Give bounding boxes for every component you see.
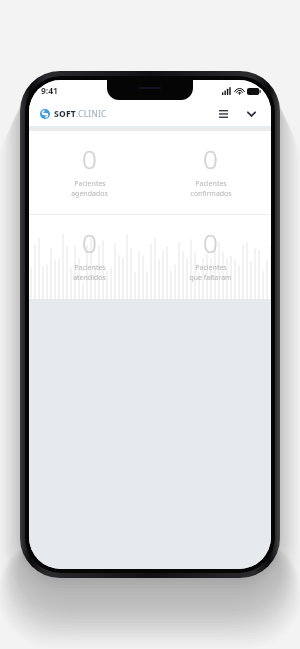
button[interactable]: SOFT bbox=[40, 108, 107, 120]
staticText: SOFT bbox=[54, 108, 76, 120]
button[interactable]: Expand bbox=[242, 104, 260, 124]
staticText: .CLINIC bbox=[76, 108, 107, 120]
button[interactable]: 0 bbox=[29, 131, 150, 214]
button[interactable]: Menu bbox=[214, 104, 232, 124]
button[interactable]: 0 bbox=[29, 215, 150, 299]
staticText: 9:41 bbox=[41, 85, 58, 97]
staticText: 0 bbox=[82, 141, 97, 176]
staticText: atendidos bbox=[73, 273, 106, 283]
staticText: Pacientes bbox=[74, 179, 106, 189]
button[interactable]: 0 bbox=[150, 131, 271, 214]
staticText: Pacientes bbox=[195, 179, 227, 189]
staticText: 0 bbox=[203, 141, 218, 176]
staticText: confirmados bbox=[190, 189, 232, 199]
staticText: Pacientes bbox=[195, 263, 227, 273]
staticText: Pacientes bbox=[74, 263, 106, 273]
staticText: 0 bbox=[203, 225, 218, 260]
staticText: que faltaram bbox=[189, 273, 232, 283]
staticText: 0 bbox=[82, 225, 97, 260]
staticText: agendados bbox=[71, 189, 108, 199]
button[interactable]: 0 bbox=[150, 215, 271, 299]
